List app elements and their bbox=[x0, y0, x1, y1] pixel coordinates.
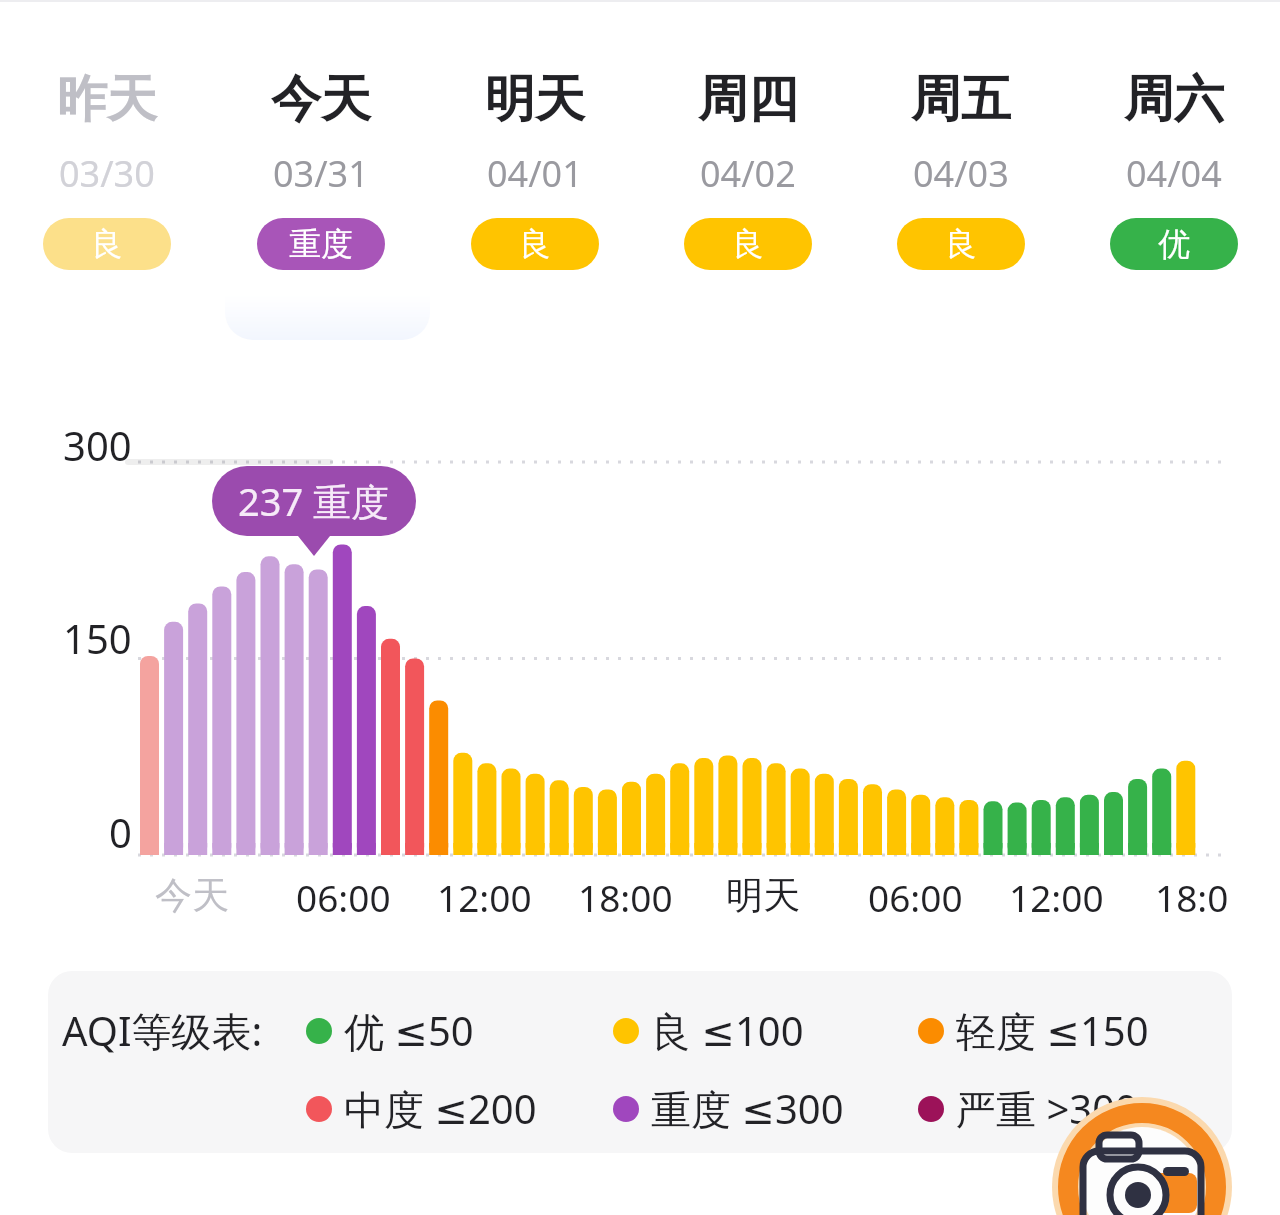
staticText: 良 bbox=[945, 224, 977, 264]
button[interactable]: 昨天 bbox=[0, 0, 214, 360]
staticText: 04/04 bbox=[1126, 149, 1222, 198]
staticText: 06:00 bbox=[868, 872, 963, 922]
staticText: 12:00 bbox=[437, 872, 532, 922]
staticText: 重度 bbox=[289, 224, 353, 264]
staticText: 周四 bbox=[698, 68, 798, 131]
button[interactable]: 周六 bbox=[1067, 0, 1280, 360]
button[interactable]: 良 ≤100 bbox=[613, 1003, 804, 1058]
button[interactable]: 中度 ≤200 bbox=[306, 1081, 537, 1136]
staticText: 良 ≤100 bbox=[651, 1003, 804, 1058]
button[interactable]: 周四 bbox=[641, 0, 854, 360]
button[interactable]: 严重 >300 bbox=[918, 1081, 1138, 1136]
staticText: 今天 bbox=[155, 872, 229, 919]
staticText: 良 bbox=[519, 224, 551, 264]
staticText: 12:00 bbox=[1009, 872, 1104, 922]
staticText: 轻度 ≤150 bbox=[956, 1003, 1149, 1058]
staticText: 237 重度 bbox=[238, 475, 390, 527]
button[interactable]: 重度 ≤300 bbox=[613, 1081, 844, 1136]
staticText: AQI等级表: bbox=[62, 1003, 263, 1058]
button[interactable]: Camera bbox=[1052, 1097, 1232, 1215]
button[interactable]: 周五 bbox=[854, 0, 1067, 360]
staticText: 03/30 bbox=[59, 149, 155, 198]
staticText: 周五 bbox=[911, 68, 1011, 131]
staticText: 明天 bbox=[485, 68, 585, 131]
staticText: 04/01 bbox=[487, 149, 583, 198]
staticText: 18:00 bbox=[578, 872, 673, 922]
staticText: 中度 ≤200 bbox=[344, 1081, 537, 1136]
staticText: 0 bbox=[109, 805, 132, 859]
staticText: 重度 ≤300 bbox=[651, 1081, 844, 1136]
staticText: 良 bbox=[732, 224, 764, 264]
staticText: 04/02 bbox=[700, 149, 796, 198]
staticText: 优 bbox=[1158, 224, 1190, 264]
staticText: 良 bbox=[91, 224, 123, 264]
staticText: 300 bbox=[63, 418, 132, 472]
staticText: 03/31 bbox=[273, 149, 369, 198]
staticText: 今天 bbox=[271, 68, 371, 131]
staticText: 优 ≤50 bbox=[344, 1003, 474, 1058]
staticText: 严重 >300 bbox=[956, 1081, 1138, 1136]
button[interactable]: 明天 bbox=[428, 0, 641, 360]
staticText: 18:0 bbox=[1155, 872, 1229, 922]
button[interactable]: 优 ≤50 bbox=[306, 1003, 474, 1058]
staticText: 昨天 bbox=[57, 68, 157, 131]
staticText: 06:00 bbox=[296, 872, 391, 922]
staticText: 周六 bbox=[1124, 68, 1224, 131]
staticText: 04/03 bbox=[913, 149, 1009, 198]
staticText: 150 bbox=[63, 611, 132, 665]
button[interactable]: 轻度 ≤150 bbox=[918, 1003, 1149, 1058]
staticText: 明天 bbox=[726, 872, 800, 919]
button[interactable]: 今天 bbox=[214, 0, 428, 360]
